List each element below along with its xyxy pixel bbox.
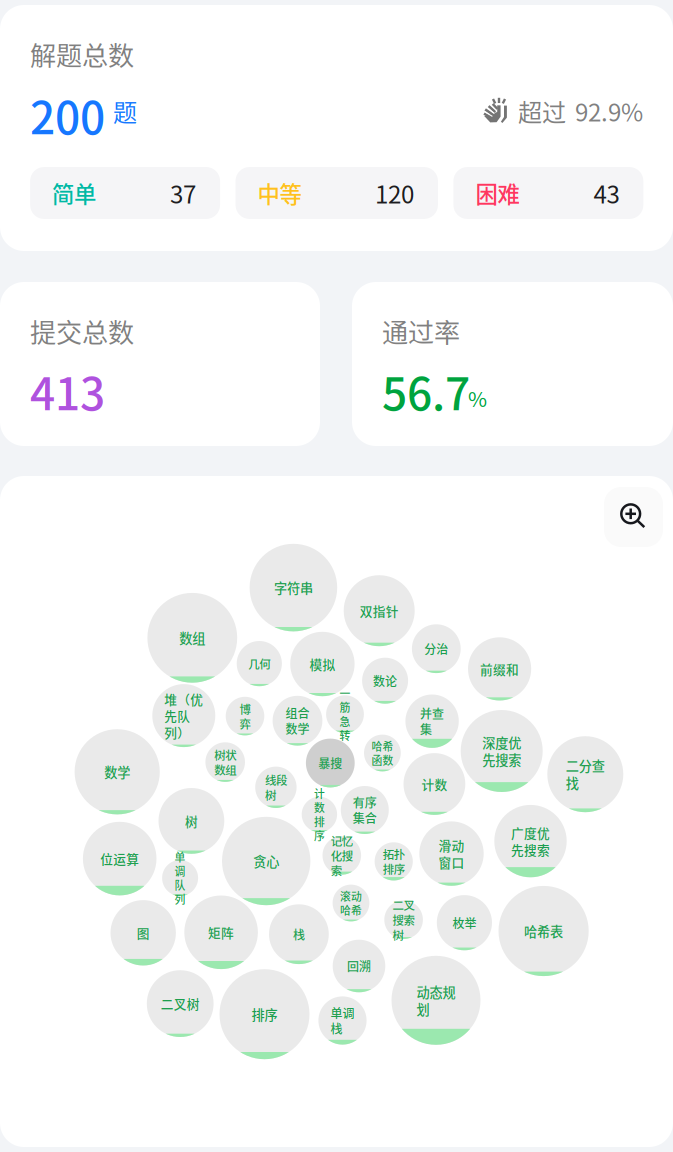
staticText: 广度优 先搜索	[511, 825, 550, 858]
staticText: 哈希 函数	[371, 739, 393, 767]
staticText: 位运算	[100, 850, 139, 867]
staticText: 动态规 划	[416, 983, 455, 1017]
staticText: 120	[375, 175, 414, 210]
staticText: 数论	[373, 673, 397, 688]
staticText: 排序	[251, 1006, 277, 1023]
staticText: 简单	[52, 177, 96, 209]
button[interactable]: Zoom in	[604, 487, 663, 547]
staticText: 二分查 找	[566, 757, 605, 791]
button[interactable]: 中等	[235, 167, 438, 219]
staticText: 有序 集合	[353, 794, 377, 826]
staticText: 提交总数	[30, 312, 134, 350]
staticText: 二叉树	[161, 995, 200, 1012]
staticText: 线段 树	[265, 772, 287, 802]
staticText: 单 调 队 列	[175, 850, 186, 906]
staticText: 计 数 排 序	[314, 786, 325, 843]
staticText: 贪心	[253, 852, 279, 870]
staticText: 回溯	[347, 958, 371, 974]
staticText: 暴搜	[318, 755, 342, 771]
staticText: 组合 数学	[285, 705, 309, 736]
staticText: 堆（优 先队 列）	[164, 691, 203, 740]
staticText: 栈	[293, 926, 305, 942]
staticText: 一 筋 急 转	[339, 686, 350, 742]
staticText: 数组	[179, 629, 205, 646]
staticText: 树	[185, 813, 198, 829]
staticText: 记忆 化搜 索	[331, 833, 353, 878]
button[interactable]: 简单	[30, 167, 220, 219]
staticText: 几何	[248, 656, 270, 671]
staticText: 92.9%	[575, 93, 643, 128]
staticText: 字符串	[274, 579, 313, 596]
staticText: 模拟	[309, 656, 335, 672]
staticText: 双指针	[360, 602, 399, 619]
staticText: 56.7	[382, 359, 470, 423]
staticText: %	[468, 383, 487, 413]
staticText: 37	[170, 175, 196, 210]
staticText: 200	[30, 83, 105, 147]
staticText: 分治	[424, 641, 448, 656]
staticText: 拓扑 排序	[383, 846, 405, 876]
staticText: 深度优 先搜索	[482, 734, 521, 768]
staticText: 单调 栈	[330, 1005, 354, 1036]
staticText: 哈希表	[524, 922, 563, 940]
staticText: 题	[113, 93, 137, 128]
staticText: 矩阵	[208, 924, 234, 940]
staticText: 并查 集	[420, 706, 444, 737]
staticText: 博 弈	[239, 701, 250, 731]
staticText: 413	[30, 359, 105, 423]
staticText: 前缀和	[480, 661, 519, 677]
staticText: 超过	[518, 93, 566, 128]
button[interactable]: 困难	[453, 167, 643, 219]
staticText: 滚动 哈希	[340, 889, 362, 917]
staticText: 二叉 搜索 树	[393, 897, 415, 942]
staticText: 树状 数组	[214, 747, 236, 777]
staticText: 滑动 窗口	[438, 837, 464, 870]
staticText: 43	[593, 175, 619, 210]
staticText: 通过率	[382, 312, 460, 350]
staticText: 解题总数	[30, 35, 134, 73]
staticText: 中等	[257, 177, 301, 209]
staticText: 困难	[475, 177, 519, 209]
staticText: 数学	[104, 763, 130, 780]
staticText: 图	[137, 924, 150, 941]
staticText: 计数	[421, 776, 447, 792]
staticText: 枚举	[452, 915, 476, 930]
